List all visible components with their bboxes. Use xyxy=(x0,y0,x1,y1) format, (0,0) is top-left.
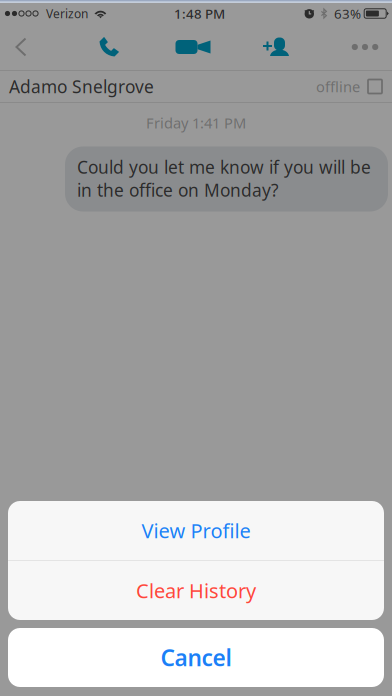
staticText: View Profile xyxy=(141,517,250,544)
staticText: Verizon xyxy=(46,5,88,21)
button[interactable]: Video call xyxy=(171,24,215,70)
staticText: Cancel xyxy=(160,642,231,672)
staticText: 1:48 PM xyxy=(174,5,225,22)
button[interactable]: Call xyxy=(88,24,132,70)
staticText: Could you let me know if you will be in … xyxy=(77,155,371,201)
button[interactable]: More xyxy=(339,24,391,70)
staticText: Clear History xyxy=(136,577,256,604)
button[interactable]: Clear History xyxy=(8,561,384,620)
staticText: 63% xyxy=(334,5,361,22)
button[interactable]: Add person xyxy=(254,24,298,70)
staticText: Adamo Snelgrove xyxy=(9,75,154,98)
staticText: Friday 1:41 PM xyxy=(146,113,246,132)
button[interactable]: View Profile xyxy=(8,501,384,560)
button[interactable]: Back xyxy=(0,24,42,70)
staticText: offline xyxy=(316,77,360,96)
button[interactable]: Cancel xyxy=(8,628,384,687)
